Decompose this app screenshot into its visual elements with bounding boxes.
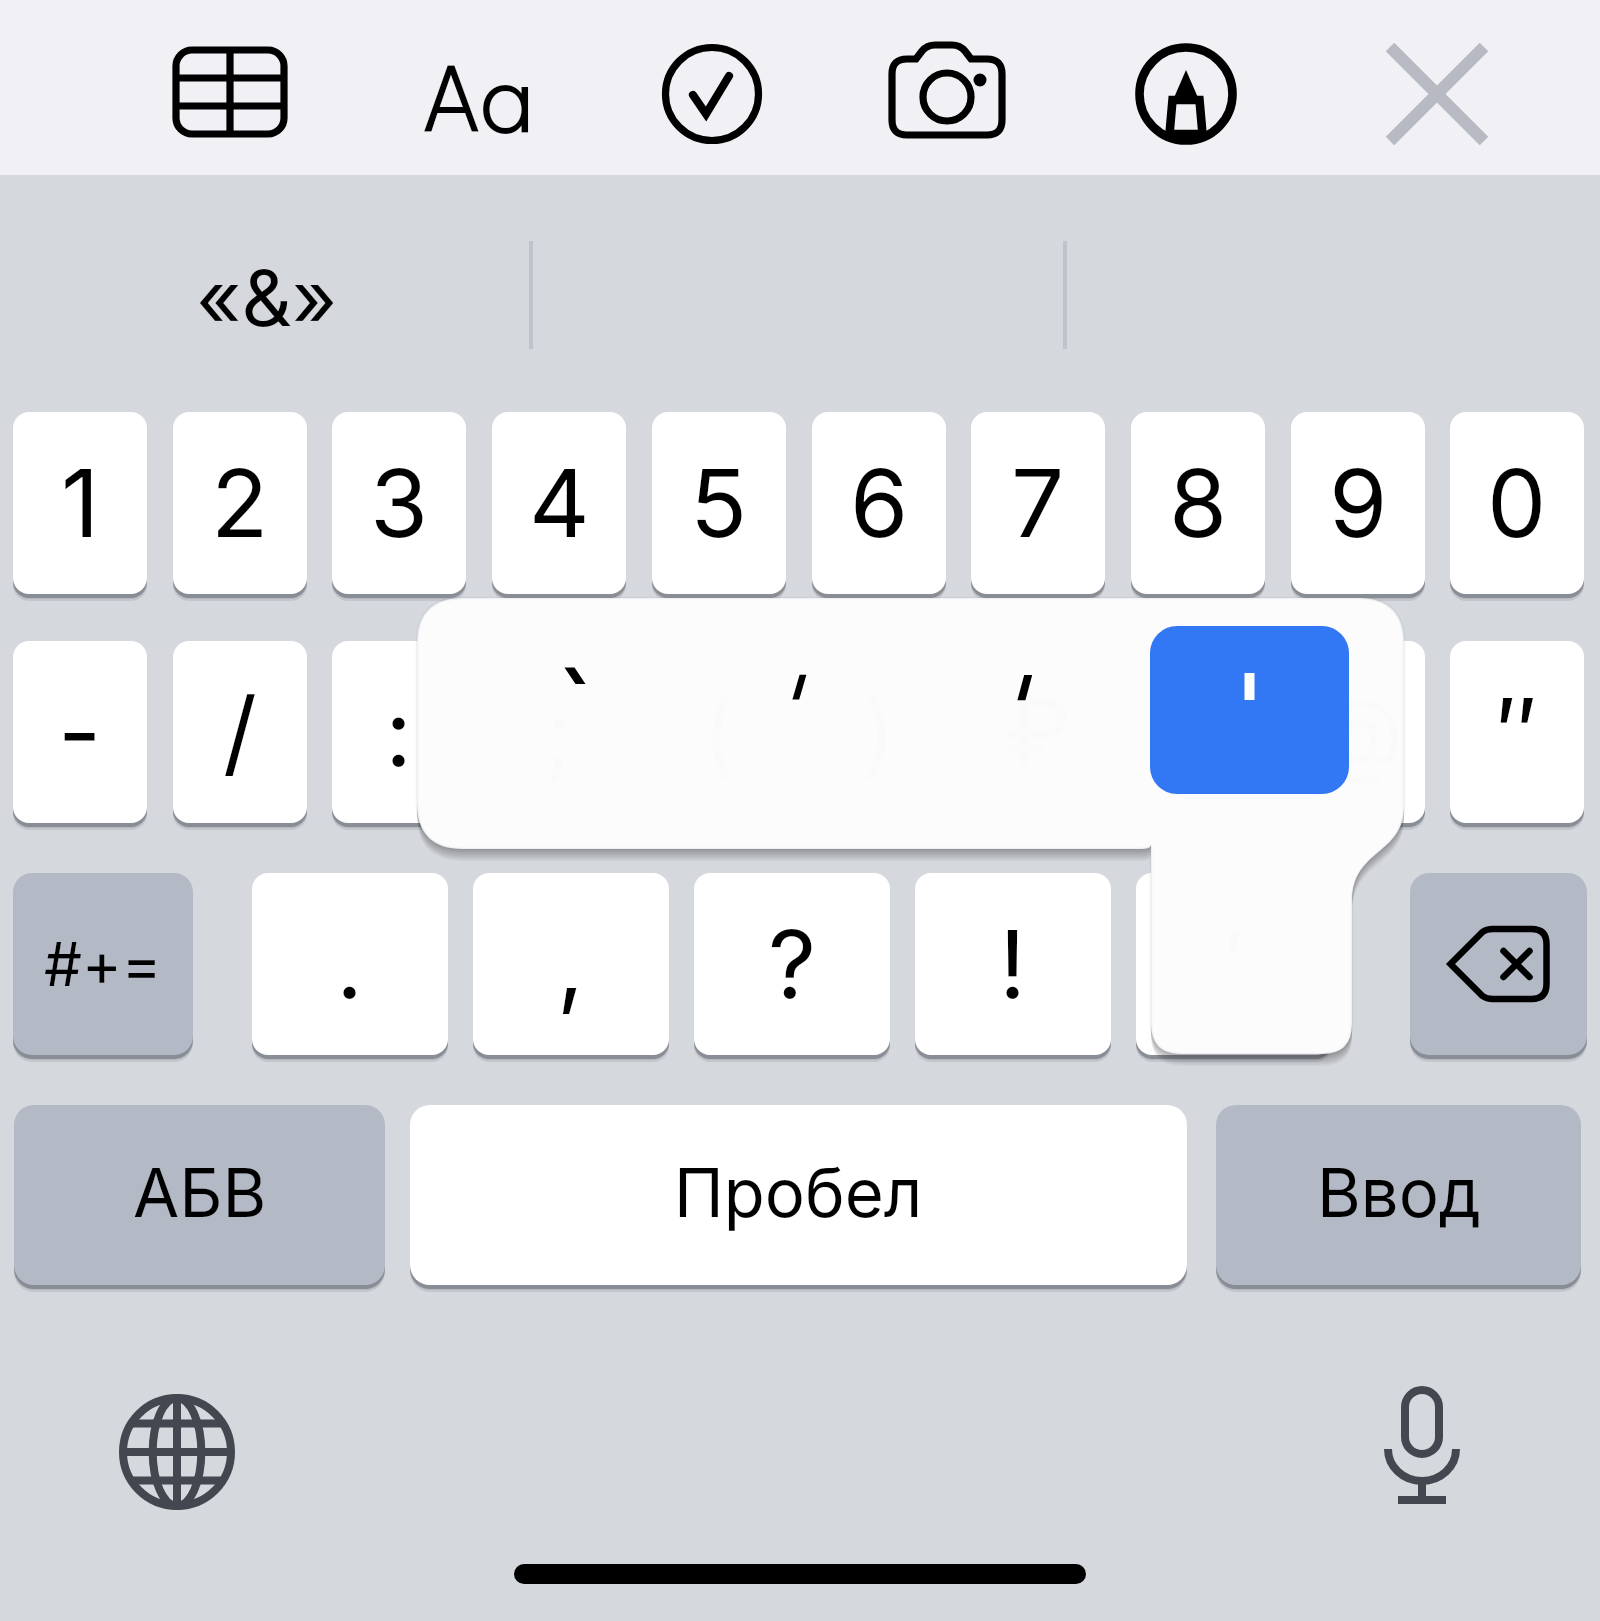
staticText: 2	[211, 446, 269, 560]
button[interactable]: ′	[1136, 873, 1332, 1055]
button[interactable]: 9	[1291, 412, 1425, 594]
staticText: .	[336, 907, 364, 1021]
staticText: 1	[61, 446, 100, 560]
button[interactable]: ₽	[971, 641, 1105, 823]
staticText: :	[385, 675, 413, 789]
button[interactable]: @	[1291, 641, 1425, 823]
staticText: 8	[1169, 446, 1228, 560]
button[interactable]: -	[13, 641, 147, 823]
button[interactable]: !	[915, 873, 1111, 1055]
button[interactable]: Checklist	[632, 14, 792, 174]
staticText: 3	[370, 446, 429, 560]
staticText: #+=	[44, 928, 162, 1001]
staticText: 6	[850, 446, 909, 560]
staticText: !	[999, 907, 1027, 1021]
button[interactable]: Camera	[867, 14, 1027, 174]
button[interactable]: Switch language	[107, 1382, 247, 1522]
button[interactable]: 1	[13, 412, 147, 594]
button[interactable]: 5	[652, 412, 786, 594]
staticText: ₽	[1005, 675, 1071, 789]
staticText: «&»	[196, 250, 338, 344]
staticText: ″	[1496, 675, 1538, 789]
button[interactable]: ,	[473, 873, 669, 1055]
button[interactable]: Ввод	[1216, 1105, 1581, 1285]
staticText: -	[58, 675, 102, 789]
button[interactable]: 6	[812, 412, 946, 594]
button[interactable]	[926, 625, 1126, 792]
button[interactable]: «&»	[152, 232, 382, 362]
button[interactable]	[699, 625, 899, 792]
button[interactable]: /	[173, 641, 307, 823]
staticText: АБВ	[133, 1152, 267, 1233]
button[interactable]: #+=	[13, 873, 193, 1055]
staticText: Aa	[423, 31, 535, 158]
staticText: ?	[768, 907, 817, 1021]
button[interactable]: ?	[694, 873, 890, 1055]
staticText: @	[1313, 675, 1404, 789]
staticText: 9	[1329, 446, 1388, 560]
staticText: ,	[557, 907, 585, 1021]
button[interactable]: АБВ	[14, 1105, 385, 1285]
button[interactable]: Close	[1357, 14, 1517, 174]
button[interactable]: Table	[150, 14, 310, 174]
button[interactable]: 2	[173, 412, 307, 594]
button[interactable]: Backspace	[1410, 873, 1587, 1055]
staticText: 4	[529, 446, 590, 560]
staticText: /	[223, 675, 257, 789]
button[interactable]: Text format	[399, 14, 559, 174]
staticText: Пробел	[674, 1152, 923, 1233]
button[interactable]: ″	[1450, 641, 1584, 823]
button[interactable]: 3	[332, 412, 466, 594]
staticText: Ввод	[1317, 1152, 1481, 1233]
button[interactable]: 8	[1131, 412, 1265, 594]
button[interactable]	[475, 625, 675, 792]
button[interactable]: :	[332, 641, 466, 823]
button[interactable]: .	[252, 873, 448, 1055]
button[interactable]: Markup	[1106, 14, 1266, 174]
staticText: 0	[1487, 446, 1547, 560]
button[interactable]: Dictation	[1352, 1375, 1492, 1515]
button[interactable]: 0	[1450, 412, 1584, 594]
button[interactable]: 7	[971, 412, 1105, 594]
staticText: 7	[1011, 446, 1065, 560]
button[interactable]: &	[1131, 641, 1265, 823]
staticText: ;	[545, 675, 574, 789]
button[interactable]: Apostrophe	[1150, 626, 1349, 794]
button[interactable]: Пробел	[410, 1105, 1187, 1285]
button[interactable]: 4	[492, 412, 626, 594]
button[interactable]: ;	[492, 641, 626, 823]
other: Backspace	[1410, 873, 1587, 1055]
staticText: 5	[690, 446, 748, 560]
